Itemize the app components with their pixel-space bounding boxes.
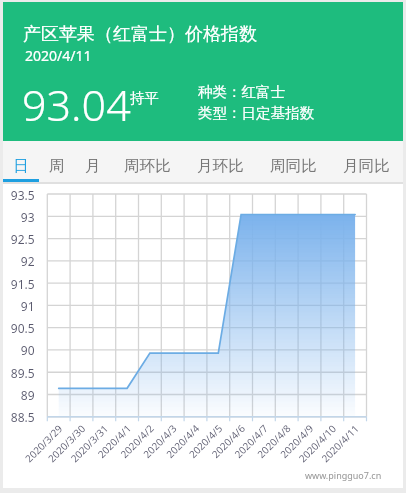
- staticText: 周同比: [270, 156, 317, 176]
- staticText: 月环比: [197, 156, 244, 176]
- button[interactable]: 月同比: [330, 141, 403, 182]
- staticText: 月同比: [343, 156, 390, 176]
- button[interactable]: 周: [39, 141, 75, 182]
- button[interactable]: 周环比: [111, 141, 184, 182]
- staticText: 月: [85, 156, 101, 176]
- staticText: 周环比: [124, 156, 171, 176]
- staticText: 周: [49, 156, 65, 176]
- staticText: 93.04: [22, 75, 131, 134]
- staticText: 2020/4/11: [25, 46, 92, 65]
- staticText: 日: [13, 156, 29, 176]
- staticText: 种类：红富士: [198, 83, 285, 101]
- button[interactable]: 月: [75, 141, 111, 182]
- staticText: 产区苹果（红富士）价格指数: [23, 23, 257, 46]
- button[interactable]: 日: [3, 141, 39, 182]
- staticText: www.pingguo7.cn: [305, 469, 382, 481]
- button[interactable]: 月环比: [184, 141, 257, 182]
- staticText: 类型：日定基指数: [198, 104, 314, 122]
- staticText: 持平: [130, 89, 159, 107]
- button[interactable]: 周同比: [257, 141, 330, 182]
